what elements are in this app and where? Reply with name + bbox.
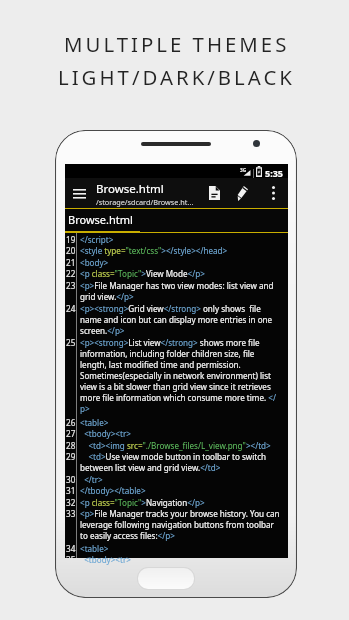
staticText: MULTIPLE THEMES: [64, 30, 290, 58]
staticText: <tbody><tr>: [80, 428, 281, 439]
staticText: </script>: [80, 234, 281, 245]
button[interactable]: Edit: [231, 180, 254, 206]
staticText: <body>: [80, 257, 281, 268]
staticText: 21: [66, 257, 76, 268]
staticText: 23: [66, 280, 76, 291]
staticText: 3G: [240, 167, 247, 174]
staticText: 35: [66, 554, 76, 565]
staticText: 20: [66, 245, 76, 256]
staticText: 27: [66, 428, 76, 439]
staticText: </tr>: [80, 474, 281, 485]
staticText: /storage/sdcard/Browse.ht...: [96, 197, 194, 207]
staticText: 33: [66, 508, 76, 519]
staticText: <td><img src="./Browse_files/L_view.png"…: [80, 440, 281, 451]
staticText: 24: [66, 303, 76, 314]
button[interactable]: Browse.html: [65, 209, 140, 232]
button[interactable]: New file: [203, 180, 226, 206]
staticText: 25: [66, 337, 76, 348]
staticText: <p><strong>List view</strong> shows more…: [80, 337, 281, 414]
staticText: 30: [66, 474, 76, 485]
staticText: LIGHT/DARK/BLACK: [58, 63, 295, 91]
staticText: Browse.html: [96, 181, 164, 197]
staticText: 22: [66, 268, 76, 279]
staticText: <p><strong>Grid view</strong> only shows…: [80, 303, 281, 336]
button[interactable]: More options: [263, 180, 283, 206]
staticText: <p>File Manager has two view modes: list…: [80, 280, 281, 302]
staticText: <p class="Topic">View Mode</p>: [80, 268, 281, 279]
staticText: 32: [66, 497, 76, 508]
staticText: 31: [66, 485, 76, 496]
staticText: 29: [66, 451, 76, 462]
staticText: 19: [66, 234, 76, 245]
staticText: Browse.html: [68, 212, 133, 227]
staticText: <table>: [80, 417, 281, 428]
staticText: 28: [66, 440, 76, 451]
staticText: <style type="text/css"></style></head>: [80, 245, 281, 256]
staticText: <p class="Topic">Navigation</p>: [80, 497, 281, 508]
staticText: 5:35: [265, 167, 283, 179]
staticText: </tbody></table>: [80, 485, 281, 496]
button[interactable]: Open navigation menu: [69, 181, 90, 205]
staticText: <td>Use view mode button in toolbar to s…: [80, 451, 281, 473]
staticText: <p>File Manager tracks your browse histo…: [80, 508, 281, 541]
staticText: <table>: [80, 543, 281, 554]
staticText: 26: [66, 417, 76, 428]
staticText: <tbody><tr>: [80, 554, 281, 565]
staticText: 34: [66, 543, 76, 554]
